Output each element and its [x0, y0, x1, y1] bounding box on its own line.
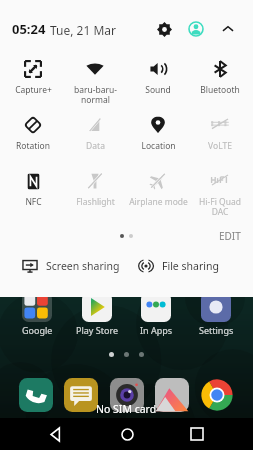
button[interactable]: Gallery: [155, 378, 189, 412]
staticText: In Apps: [140, 324, 173, 336]
staticText: Play Store: [76, 324, 118, 336]
staticText: No SIM card: [96, 402, 157, 416]
staticText: 05:24: [12, 20, 46, 38]
button[interactable]: User: [183, 16, 209, 42]
button[interactable]: Data: [65, 110, 125, 162]
button[interactable]: Recents: [182, 419, 212, 449]
staticText: NFC: [25, 196, 42, 208]
button[interactable]: Flashlight: [65, 166, 125, 218]
staticText: Screen sharing: [46, 259, 120, 273]
button[interactable]: Hi-Fi Quad DAC: [190, 166, 250, 218]
button[interactable]: Capture+: [3, 54, 63, 106]
staticText: Airplane mode: [129, 196, 188, 208]
button[interactable]: EDIT: [219, 229, 241, 243]
button[interactable]: baru-baru- normal: [65, 54, 125, 106]
staticText: Rotation: [16, 140, 50, 152]
button[interactable]: Messages: [64, 378, 98, 412]
button[interactable]: Location: [128, 110, 188, 162]
staticText: baru-baru- normal: [74, 84, 117, 105]
button[interactable]: Chrome: [200, 378, 234, 412]
staticText: Capture+: [15, 84, 52, 96]
button[interactable]: NFC: [3, 166, 63, 218]
staticText: Hi-Fi Quad DAC: [199, 196, 241, 217]
button[interactable]: File sharing: [126, 258, 253, 274]
staticText: Data: [86, 140, 105, 152]
staticText: Tue, 21 Mar: [50, 22, 117, 38]
staticText: File sharing: [162, 259, 219, 273]
button[interactable]: Back: [41, 419, 71, 449]
staticText: Settings: [199, 324, 234, 336]
staticText: Sound: [145, 84, 171, 96]
staticText: Google: [22, 324, 53, 336]
button[interactable]: Settings: [188, 292, 244, 336]
staticText: Bluetooth: [200, 84, 240, 96]
button[interactable]: Bluetooth: [190, 54, 250, 106]
button[interactable]: Rotation: [3, 110, 63, 162]
button[interactable]: Screen sharing: [0, 258, 126, 274]
button[interactable]: Home: [112, 419, 142, 449]
button[interactable]: Settings: [151, 16, 177, 42]
staticText: VoLTE: [208, 140, 232, 152]
button[interactable]: Collapse: [215, 16, 241, 42]
button[interactable]: Phone: [19, 378, 53, 412]
button[interactable]: Play Store: [69, 292, 125, 336]
staticText: Flashlight: [76, 196, 115, 208]
button[interactable]: Sound: [128, 54, 188, 106]
button[interactable]: Airplane mode: [128, 166, 188, 218]
button[interactable]: Google: [9, 292, 65, 336]
button[interactable]: In Apps: [128, 292, 184, 336]
button[interactable]: Camera: [110, 378, 144, 412]
button[interactable]: VoLTE: [190, 110, 250, 162]
staticText: Location: [141, 140, 176, 152]
staticText: EDIT: [219, 229, 241, 243]
